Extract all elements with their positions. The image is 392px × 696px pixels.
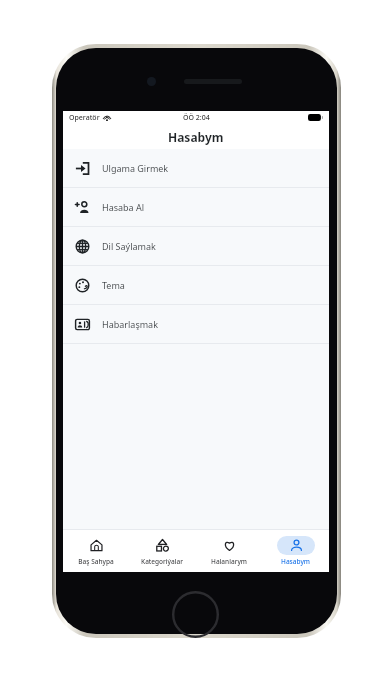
staticText: Hasabym (281, 557, 310, 566)
staticText: Kategoriýalar (141, 557, 183, 566)
button[interactable]: Halanlarym (195, 530, 262, 572)
staticText: Operatör (69, 113, 100, 123)
staticText: Halanlarym (211, 557, 247, 566)
button[interactable]: Habarlaşmak (63, 305, 329, 343)
other: Kategoriýalar (156, 539, 169, 552)
other: Halanlarym (223, 539, 236, 552)
staticText: Habarlaşmak (102, 318, 158, 330)
staticText: Ulgama Girmek (102, 162, 169, 174)
staticText: Tema (102, 279, 125, 291)
staticText: ÖÖ 2:04 (183, 113, 210, 123)
staticText: Hasaba Al (102, 201, 145, 213)
button[interactable]: Hasabym (262, 530, 329, 572)
button[interactable]: Kategoriýalar (129, 530, 195, 572)
button[interactable]: Dil Saýlamak (63, 227, 329, 265)
button[interactable]: Ulgama Girmek (63, 149, 329, 187)
button[interactable]: Baş Sahypa (63, 530, 129, 572)
staticText: Baş Sahypa (78, 557, 114, 566)
staticText: Dil Saýlamak (102, 240, 156, 252)
other: Baş Sahypa (90, 539, 103, 552)
staticText: Hasabym (168, 129, 224, 145)
button[interactable]: Hasaba Al (63, 188, 329, 226)
other: Hasabym (290, 539, 303, 552)
button[interactable]: Tema (63, 266, 329, 304)
